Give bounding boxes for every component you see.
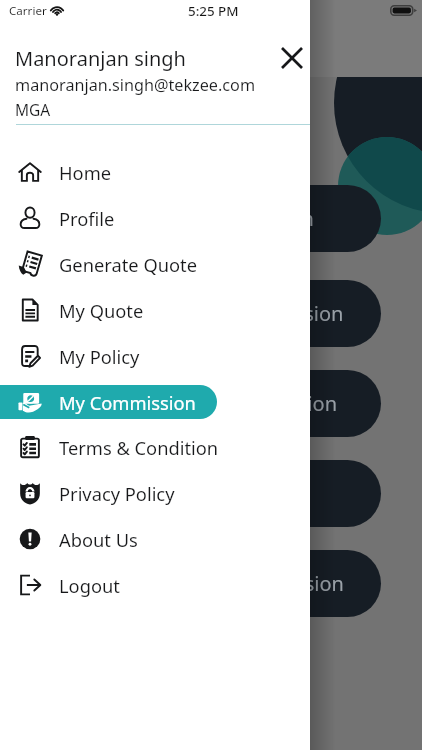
staticText: Profile [59,206,115,231]
button[interactable]: Terms & Condition [0,430,310,464]
staticText: Carrier [9,3,47,19]
staticText: MGA [15,99,51,120]
button[interactable]: Home [0,155,310,189]
staticText: Fire Commission [188,570,344,597]
staticText: Logout [59,573,120,598]
staticText: Generate Quote [59,252,197,277]
button[interactable]: Privacy Policy [0,476,310,510]
staticText: Terms & Condition [59,435,219,460]
button[interactable]: Close drawer [272,38,312,78]
button[interactable]: My Commission [0,385,217,419]
staticText: About Us [59,527,138,552]
button[interactable]: Profile [0,201,310,235]
staticText: manoranjan.singh@tekzee.com [15,74,256,96]
staticText: My Commission [59,390,196,415]
button[interactable]: About Us [0,522,310,556]
staticText: Manoranjan singh [15,45,186,72]
staticText: Home [59,160,112,185]
staticText: 5:25 PM [188,2,239,20]
staticText: Health Commission [160,300,344,327]
button[interactable]: My Quote [0,293,310,327]
staticText: My Policy [59,344,140,369]
button[interactable]: Generate Quote [0,247,310,281]
staticText: My Quote [59,298,144,323]
staticText: Privacy Policy [59,481,175,506]
staticText: Motor Plan [210,205,314,232]
staticText: Travel Protection [179,390,337,417]
button[interactable]: My Policy [0,339,310,373]
button[interactable]: Logout [0,568,310,602]
